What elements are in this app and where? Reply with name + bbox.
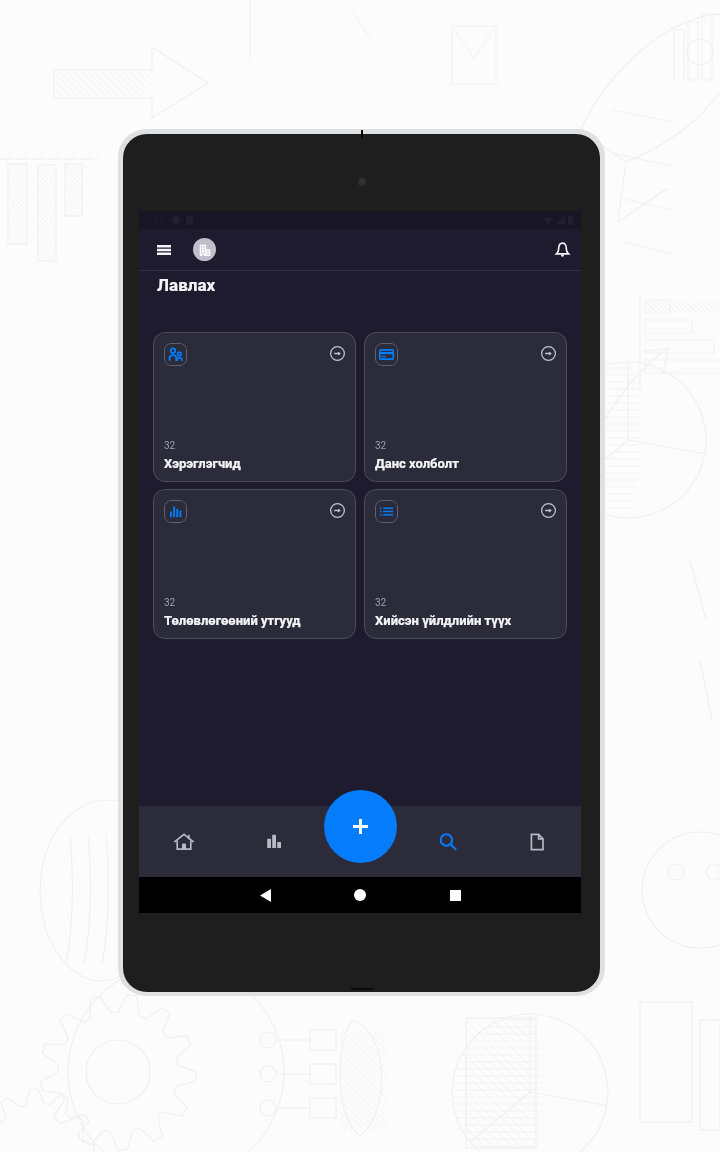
staticText: 32	[375, 597, 387, 609]
button[interactable]: 32	[153, 332, 356, 482]
button[interactable]: Back	[252, 882, 278, 908]
button[interactable]: 32	[364, 489, 567, 639]
button[interactable]: Recents	[442, 882, 468, 908]
button[interactable]: Home	[139, 806, 229, 877]
staticText: Данс холболт	[375, 456, 459, 471]
button[interactable]: Documents	[493, 806, 581, 877]
button[interactable]: Search	[403, 806, 493, 877]
staticText: 32	[375, 440, 387, 452]
staticText: Хэрэглэгчид	[164, 456, 241, 471]
button[interactable]: Add	[324, 790, 397, 863]
staticText: Хийсэн үйлдлийн түүх	[375, 613, 512, 628]
staticText: 32	[164, 597, 176, 609]
button[interactable]: Home	[347, 882, 373, 908]
button[interactable]: 32	[153, 489, 356, 639]
button[interactable]: Statistics	[229, 806, 319, 877]
button[interactable]: Organization	[193, 238, 216, 261]
button[interactable]: 32	[364, 332, 567, 482]
button[interactable]: Notifications	[551, 239, 573, 261]
staticText: Төлөвлөгөөний утгууд	[164, 613, 301, 628]
staticText: Лавлах	[157, 275, 216, 295]
staticText: 32	[164, 440, 176, 452]
button[interactable]: Menu	[152, 238, 176, 262]
